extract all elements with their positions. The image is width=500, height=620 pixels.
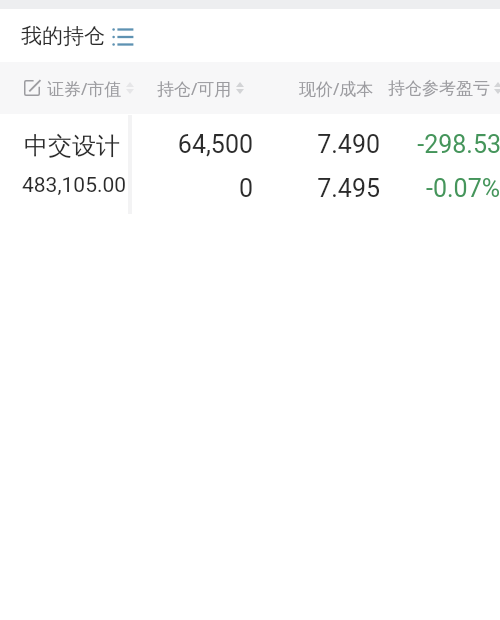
staticText: -0.07% xyxy=(290,174,500,203)
staticText: 7.495 xyxy=(170,174,380,203)
staticText: 我的持仓 xyxy=(21,23,105,49)
staticText: 64,500 xyxy=(43,130,253,159)
staticText: 现价/成本 xyxy=(299,77,374,100)
button[interactable]: List view xyxy=(108,21,138,47)
staticText: 持仓参考盈亏 xyxy=(388,78,490,99)
button[interactable]: 持仓/可用 xyxy=(157,62,244,114)
button[interactable]: 持仓参考盈亏 xyxy=(388,62,500,114)
staticText: 0 xyxy=(43,174,253,203)
button[interactable]: 现价/成本 xyxy=(299,62,374,114)
staticText: 持仓/可用 xyxy=(157,77,232,100)
staticText: 483,105.00 xyxy=(22,173,127,198)
staticText: 证券/市值 xyxy=(47,77,122,100)
staticText: 7.490 xyxy=(170,130,380,159)
staticText: -298.53 xyxy=(291,130,500,159)
button[interactable]: 我的持仓 xyxy=(21,23,105,49)
staticText: 中交设计 xyxy=(24,131,120,161)
button[interactable]: 中交设计 xyxy=(0,114,500,216)
button[interactable]: 证券/市值 xyxy=(24,62,134,114)
